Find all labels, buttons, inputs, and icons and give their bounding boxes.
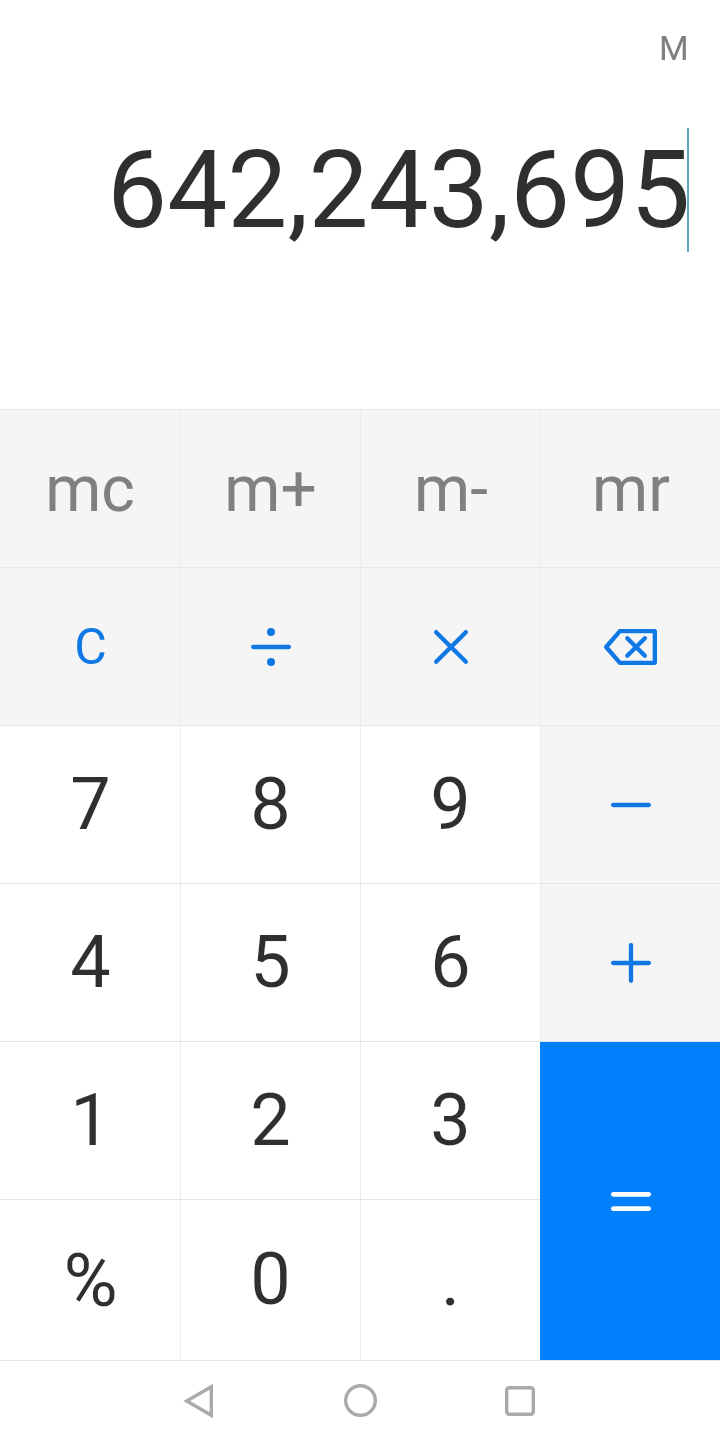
button[interactable]: Multiply bbox=[361, 568, 540, 725]
staticText: 6 bbox=[430, 920, 471, 1004]
staticText: 3 bbox=[430, 1078, 471, 1162]
staticText: 2 bbox=[250, 1078, 291, 1162]
button[interactable]: Memory clear bbox=[0, 410, 180, 567]
staticText: 8 bbox=[250, 762, 291, 846]
staticText: C bbox=[74, 618, 107, 677]
button[interactable]: 6 bbox=[361, 884, 540, 1041]
button[interactable]: 4 bbox=[0, 884, 180, 1041]
staticText: 0 bbox=[250, 1237, 291, 1321]
button[interactable]: Home bbox=[320, 1361, 400, 1440]
button[interactable]: 0 bbox=[181, 1200, 360, 1360]
button[interactable]: Memory add bbox=[181, 410, 360, 567]
button[interactable]: 5 bbox=[181, 884, 360, 1041]
staticText: 4 bbox=[70, 920, 111, 1004]
staticText: 5 bbox=[250, 920, 291, 1004]
button[interactable]: Recent apps bbox=[480, 1361, 560, 1440]
staticText: . bbox=[441, 1238, 460, 1322]
button[interactable]: Plus bbox=[541, 884, 720, 1041]
button[interactable]: Percent bbox=[0, 1200, 180, 1360]
button[interactable]: Equals bbox=[540, 1042, 720, 1360]
button[interactable]: Decimal point bbox=[361, 1200, 540, 1360]
staticText: 642,243,695 bbox=[107, 128, 691, 253]
button[interactable]: 1 bbox=[0, 1042, 180, 1199]
button[interactable]: Clear bbox=[0, 568, 180, 725]
button[interactable]: 3 bbox=[361, 1042, 540, 1199]
button[interactable]: Backspace bbox=[541, 568, 720, 725]
button[interactable]: Divide bbox=[181, 568, 360, 725]
staticText: 7 bbox=[70, 762, 111, 846]
button[interactable]: Memory recall bbox=[541, 410, 720, 567]
button[interactable]: 2 bbox=[181, 1042, 360, 1199]
button[interactable]: Memory subtract bbox=[361, 410, 540, 567]
button[interactable]: 7 bbox=[0, 726, 180, 883]
staticText: mr bbox=[592, 452, 670, 527]
staticText: 1 bbox=[70, 1078, 111, 1162]
staticText: mc bbox=[45, 452, 135, 527]
staticText: M bbox=[659, 28, 689, 68]
staticText: m+ bbox=[224, 452, 317, 527]
button[interactable]: Minus bbox=[541, 726, 720, 883]
button[interactable]: Back bbox=[159, 1361, 239, 1440]
staticText: 9 bbox=[430, 762, 471, 846]
staticText: % bbox=[63, 1237, 118, 1324]
staticText: m- bbox=[414, 452, 488, 527]
button[interactable]: 8 bbox=[181, 726, 360, 883]
button[interactable]: 9 bbox=[361, 726, 540, 883]
